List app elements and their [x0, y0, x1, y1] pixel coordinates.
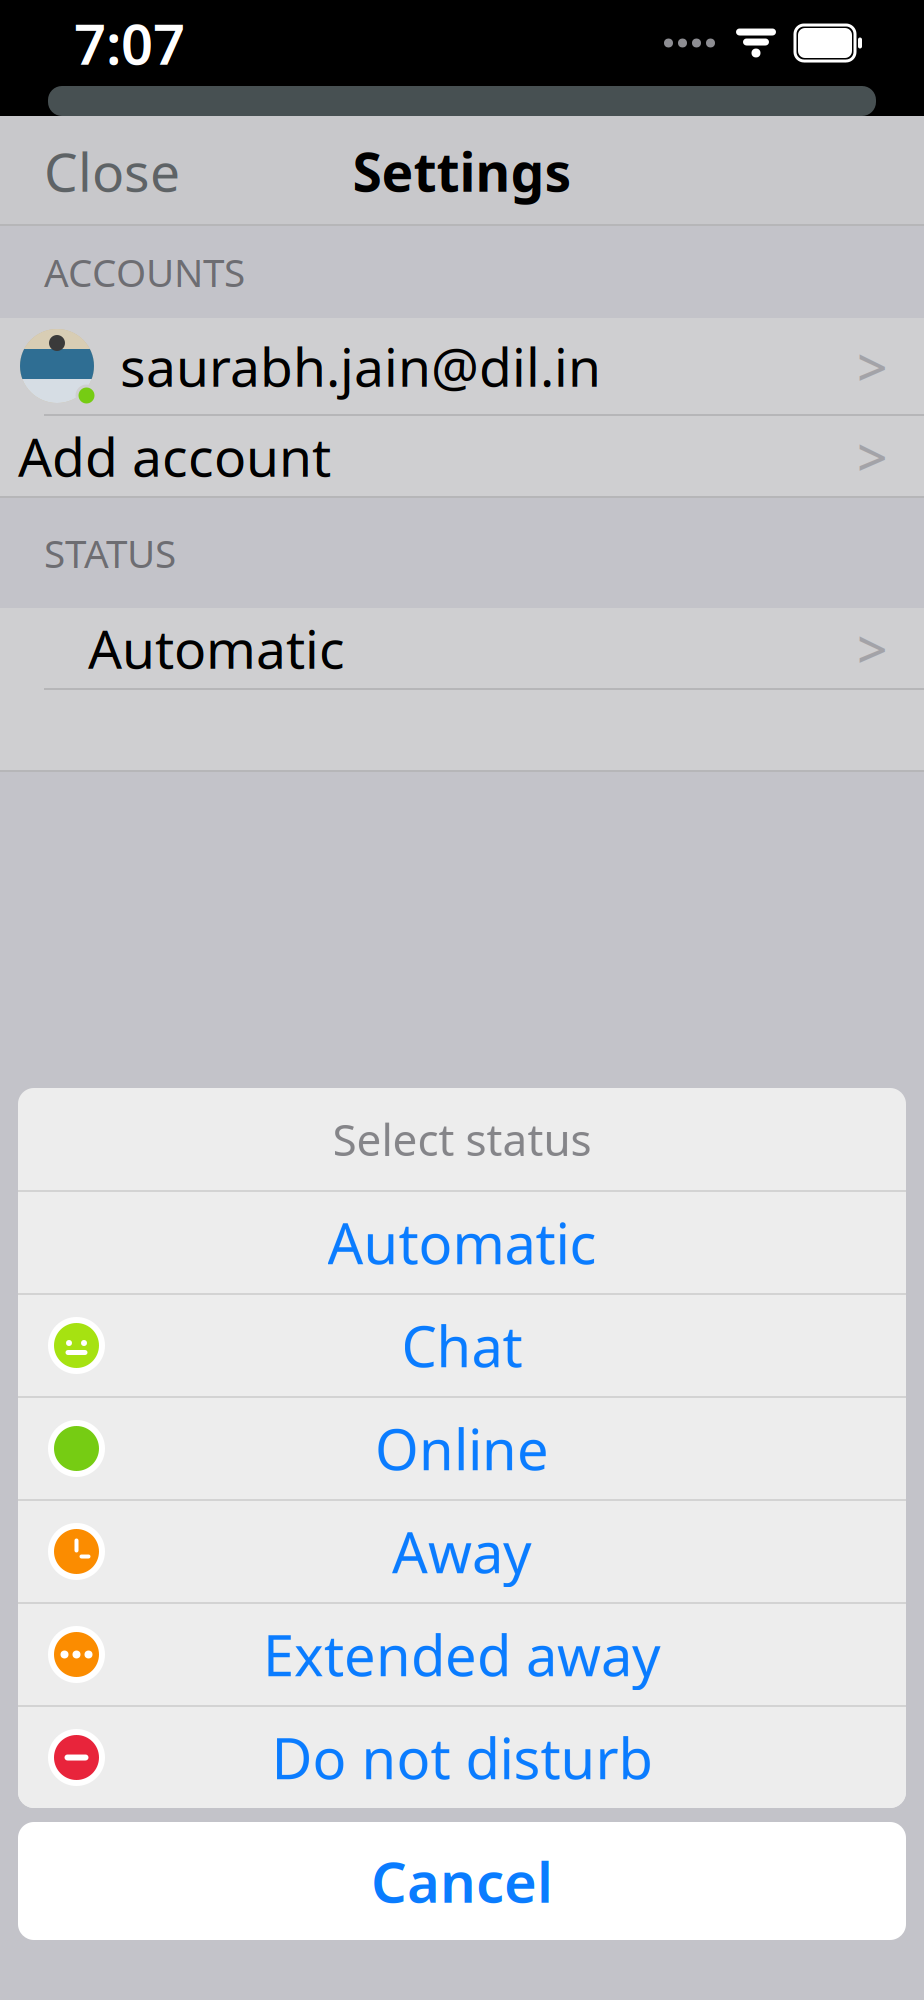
button[interactable]: saurabh.jain@dil.in	[0, 318, 924, 414]
button[interactable]: Cancel	[18, 1822, 906, 1940]
staticText: Extended away	[263, 1617, 661, 1692]
staticText: 7:07	[74, 6, 185, 80]
staticText: Do not disturb	[271, 1720, 652, 1795]
staticText: Chat	[401, 1308, 522, 1383]
staticText: Away	[392, 1514, 532, 1589]
staticText: >	[857, 331, 888, 401]
staticText: Select status	[332, 1110, 591, 1168]
button[interactable]: Automatic	[18, 1192, 906, 1293]
staticText: saurabh.jain@dil.in	[120, 331, 601, 401]
staticText: STATUS	[44, 527, 176, 579]
staticText: ACCOUNTS	[44, 246, 245, 298]
button[interactable]: Close	[0, 112, 224, 230]
button[interactable]: Chat	[18, 1295, 906, 1396]
staticText: >	[857, 421, 888, 491]
button[interactable]: Do not disturb	[18, 1707, 906, 1808]
staticText: Add account	[18, 421, 331, 491]
staticText: Automatic	[88, 613, 345, 683]
staticText: Cancel	[371, 1844, 553, 1918]
staticText: Online	[375, 1411, 549, 1486]
button[interactable]: Online	[18, 1398, 906, 1499]
staticText: Close	[44, 136, 180, 206]
staticText: Settings	[352, 136, 571, 206]
staticText: Automatic	[327, 1205, 596, 1280]
button[interactable]: Extended away	[18, 1604, 906, 1705]
button[interactable]: Automatic	[0, 608, 924, 688]
button[interactable]: Add account	[0, 416, 924, 496]
staticText: >	[857, 613, 888, 683]
button[interactable]: Away	[18, 1501, 906, 1602]
